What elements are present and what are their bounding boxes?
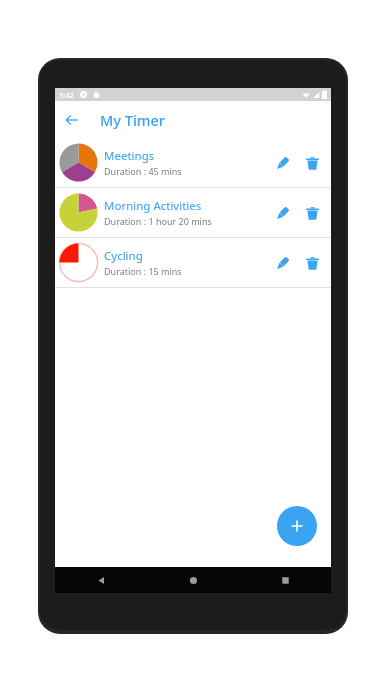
staticText: Cycling <box>104 248 143 264</box>
button[interactable]: Morning Activities <box>55 188 331 237</box>
staticText: Morning Activities <box>104 198 202 214</box>
button[interactable]: Back <box>55 567 147 593</box>
staticText: My Timer <box>100 110 165 130</box>
staticText: Duration : 45 mins <box>104 165 182 177</box>
staticText: Meetings <box>104 148 155 164</box>
button[interactable]: Edit <box>267 148 297 178</box>
staticText: 3:42 <box>59 90 74 100</box>
button[interactable]: Edit <box>267 248 297 278</box>
button[interactable]: Back <box>59 107 85 133</box>
staticText: Duration : 1 hour 20 mins <box>104 215 212 227</box>
staticText: Duration : 15 mins <box>104 265 182 277</box>
button[interactable]: Delete <box>297 248 327 278</box>
button[interactable]: Home <box>147 567 239 593</box>
button[interactable]: Edit <box>267 198 297 228</box>
button[interactable]: Meetings <box>55 138 331 187</box>
button[interactable]: Recent apps <box>239 567 331 593</box>
button[interactable]: Delete <box>297 198 327 228</box>
button[interactable]: Add timer <box>277 506 317 546</box>
button[interactable]: Cycling <box>55 238 331 287</box>
button[interactable]: Delete <box>297 148 327 178</box>
